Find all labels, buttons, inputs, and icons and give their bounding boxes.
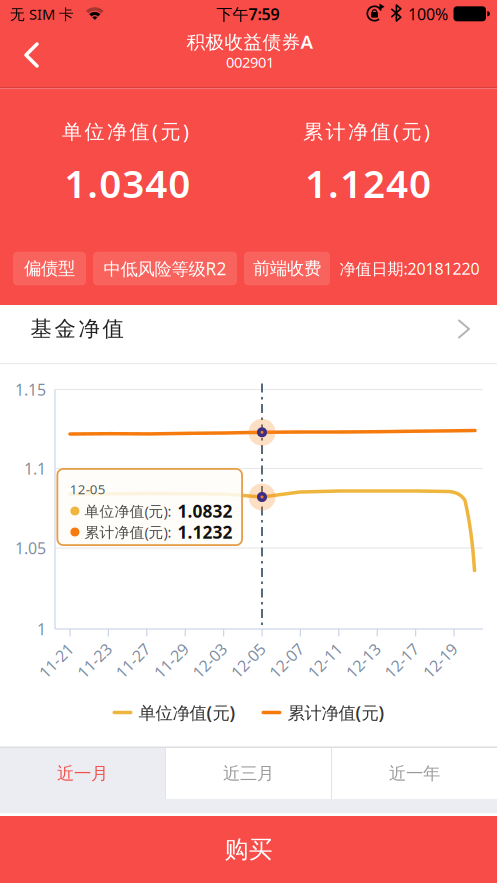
button[interactable]: 单位净值(元) xyxy=(112,701,235,724)
staticText: 近三月 xyxy=(223,763,274,784)
button[interactable]: 基金净值 xyxy=(0,305,497,363)
button[interactable]: 购买 xyxy=(0,816,497,883)
staticText: 12-13 xyxy=(343,650,384,671)
staticText: 近一月 xyxy=(57,763,108,784)
staticText: 12-07 xyxy=(266,650,307,671)
staticText: 1.1232 xyxy=(177,520,232,543)
staticText: 12-05 xyxy=(227,650,268,671)
staticText: 12-17 xyxy=(381,650,422,671)
staticText: 累计净值(元): xyxy=(84,522,175,542)
button[interactable]: 近一月 xyxy=(0,748,165,799)
button[interactable]: 近三月 xyxy=(166,748,331,799)
staticText: 11-21 xyxy=(35,650,76,671)
staticText: 12-03 xyxy=(189,650,230,671)
staticText: 100% xyxy=(408,3,448,25)
staticText: 积极收益债券A xyxy=(186,29,313,54)
staticText: 近一年 xyxy=(389,763,440,784)
staticText: 1.0832 xyxy=(177,499,232,522)
staticText: 净值日期:20181220 xyxy=(339,258,479,279)
staticText: 1.0340 xyxy=(64,157,190,209)
staticText: 单位净值(元) xyxy=(138,701,235,724)
staticText: 基金净值 xyxy=(30,316,123,342)
button[interactable]: 近一年 xyxy=(332,748,497,799)
staticText: 累计净值(元) xyxy=(303,118,430,144)
staticText: 中低风险等级R2 xyxy=(103,257,226,280)
staticText: 12-05 xyxy=(70,480,106,498)
staticText: 1 xyxy=(37,618,46,640)
staticText: 购买 xyxy=(224,835,272,864)
staticText: 1.1240 xyxy=(305,157,431,209)
button[interactable]: 累计净值(元) xyxy=(261,701,384,724)
staticText: 1.05 xyxy=(15,537,46,559)
staticText: 累计净值(元) xyxy=(287,701,384,724)
staticText: 1.15 xyxy=(15,379,46,400)
button[interactable]: Back xyxy=(0,28,62,82)
staticText: 偏债型 xyxy=(24,258,75,279)
staticText: 11-29 xyxy=(151,650,192,671)
staticText: 1.1 xyxy=(24,458,46,479)
staticText: 11-23 xyxy=(74,650,115,671)
staticText: 无 SIM 卡 xyxy=(10,4,74,24)
staticText: 下午7:59 xyxy=(216,3,279,25)
staticText: 11-27 xyxy=(112,650,153,671)
staticText: 前端收费 xyxy=(253,258,321,279)
staticText: 002901 xyxy=(226,52,274,72)
staticText: 12-11 xyxy=(304,650,345,671)
staticText: 单位净值(元): xyxy=(84,501,175,521)
staticText: 单位净值(元) xyxy=(62,118,189,144)
staticText: 12-19 xyxy=(419,650,460,671)
